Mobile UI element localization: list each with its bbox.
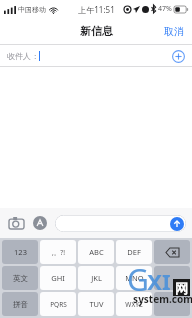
button[interactable]: GHI: [40, 266, 76, 290]
button[interactable]: TUV: [78, 292, 114, 316]
staticText: 取消: [164, 25, 184, 38]
button[interactable]: [154, 292, 190, 316]
button[interactable]: Add contact: [170, 48, 186, 64]
staticText: ,。?!: [52, 248, 65, 257]
button[interactable]: Delete: [154, 240, 190, 264]
staticText: WXYZ: [125, 300, 143, 309]
button[interactable]: PQRS: [40, 292, 76, 316]
button[interactable]: MNO: [116, 266, 152, 290]
button[interactable]: Send: [55, 215, 186, 232]
button[interactable]: WXYZ: [116, 292, 152, 316]
staticText: 英文: [13, 274, 28, 283]
staticText: PQRS: [50, 300, 67, 309]
staticText: 拼音: [13, 300, 28, 309]
staticText: 新信息: [80, 24, 113, 38]
staticText: system.com: [133, 292, 192, 306]
staticText: 网: [175, 280, 188, 296]
staticText: 123: [14, 247, 27, 257]
button[interactable]: App Store: [30, 213, 50, 233]
button[interactable]: 123: [2, 240, 38, 264]
button[interactable]: JKL: [78, 266, 114, 290]
staticText: XI: [147, 266, 171, 296]
staticText: JKL: [91, 273, 102, 283]
staticText: 中国移动: [18, 5, 46, 14]
staticText: DEF: [127, 247, 141, 257]
button[interactable]: 英文: [2, 266, 38, 290]
staticText: G: [127, 259, 149, 300]
staticText: 上午11:51: [78, 4, 115, 15]
staticText: 收件人：: [7, 51, 39, 61]
button[interactable]: DEF: [116, 240, 152, 264]
staticText: ABC: [89, 247, 104, 257]
staticText: 47%: [158, 4, 172, 14]
button[interactable]: ,。?!: [40, 240, 76, 264]
button[interactable]: [154, 266, 190, 290]
button[interactable]: 拼音: [2, 292, 38, 316]
button[interactable]: Camera: [6, 213, 26, 233]
button[interactable]: ABC: [78, 240, 114, 264]
button[interactable]: 取消: [156, 21, 192, 42]
staticText: TUV: [89, 299, 104, 309]
staticText: GHI: [51, 273, 65, 283]
button[interactable]: Send: [170, 217, 184, 231]
staticText: MNO: [125, 273, 144, 283]
